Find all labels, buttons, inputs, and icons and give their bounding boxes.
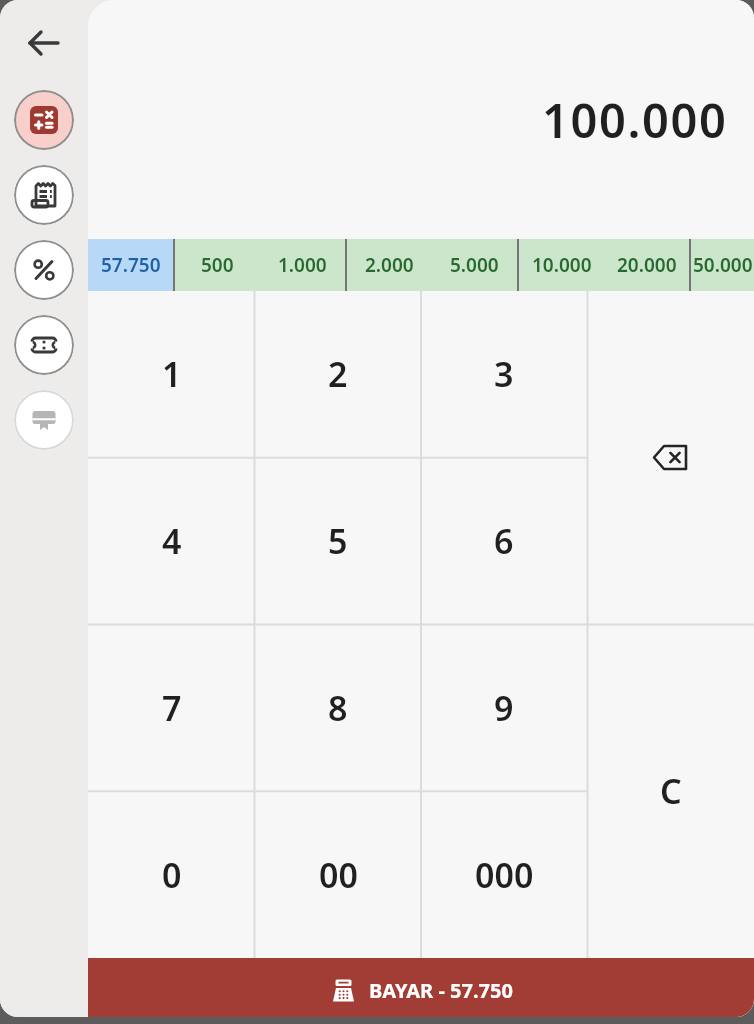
- staticText: 5: [328, 518, 348, 564]
- staticText: 000: [475, 852, 534, 898]
- staticText: 0: [162, 852, 182, 898]
- staticText: 5.000: [450, 252, 499, 278]
- button[interactable]: 6: [421, 457, 587, 624]
- staticText: 20.000: [617, 252, 677, 278]
- button[interactable]: 8: [255, 624, 421, 791]
- button[interactable]: 10.000: [519, 239, 604, 291]
- button[interactable]: 1.000: [260, 239, 345, 291]
- button[interactable]: 1: [88, 291, 255, 457]
- button[interactable]: 7: [88, 624, 255, 791]
- button[interactable]: 2.000: [347, 239, 432, 291]
- button[interactable]: 9: [421, 624, 587, 791]
- staticText: 6: [494, 518, 514, 564]
- button[interactable]: 000: [421, 791, 587, 958]
- button[interactable]: C: [587, 624, 754, 958]
- staticText: 3: [494, 351, 514, 397]
- button[interactable]: 4: [88, 457, 255, 624]
- button[interactable]: 2: [255, 291, 421, 457]
- staticText: 9: [494, 685, 514, 731]
- button[interactable]: 500: [175, 239, 260, 291]
- staticText: 2: [328, 351, 348, 397]
- button[interactable]: 0: [88, 791, 255, 958]
- staticText: 4: [162, 518, 182, 564]
- staticText: 00: [319, 852, 358, 898]
- button[interactable]: 00: [255, 791, 421, 958]
- staticText: 7: [162, 685, 182, 731]
- staticText: BAYAR - 57.750: [369, 977, 513, 1004]
- button[interactable]: 50.000: [691, 239, 754, 291]
- staticText: 100.000: [542, 88, 728, 152]
- button[interactable]: [25, 24, 63, 62]
- staticText: 1: [162, 351, 182, 397]
- button[interactable]: 3: [421, 291, 587, 457]
- button[interactable]: [14, 165, 74, 225]
- staticText: 1.000: [278, 252, 327, 278]
- staticText: 10.000: [532, 252, 592, 278]
- staticText: 2.000: [365, 252, 414, 278]
- button[interactable]: 20.000: [604, 239, 689, 291]
- button[interactable]: [14, 315, 74, 375]
- staticText: 500: [201, 252, 234, 278]
- button[interactable]: 5: [255, 457, 421, 624]
- button[interactable]: [14, 90, 74, 150]
- button[interactable]: 57.750: [88, 239, 173, 291]
- button[interactable]: [14, 240, 74, 300]
- button[interactable]: [587, 291, 754, 624]
- button[interactable]: BAYAR - 57.750: [88, 958, 754, 1017]
- staticText: 57.750: [101, 252, 161, 278]
- staticText: 8: [328, 685, 348, 731]
- staticText: 50.000: [693, 252, 753, 278]
- button[interactable]: [14, 390, 74, 450]
- staticText: C: [660, 768, 682, 814]
- button[interactable]: 5.000: [432, 239, 517, 291]
